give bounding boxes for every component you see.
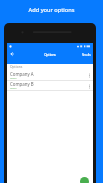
- button[interactable]: Add: [80, 177, 89, 183]
- staticText: Option: [10, 77, 17, 80]
- button[interactable]: More options: [85, 71, 93, 79]
- staticText: Company A: [10, 71, 34, 77]
- staticText: Options: [7, 53, 93, 57]
- button[interactable]: Results: [80, 51, 93, 59]
- staticText: Company B: [10, 81, 34, 87]
- button[interactable]: Back: [8, 50, 16, 58]
- button[interactable]: Company A: [7, 70, 93, 80]
- staticText: Results: [82, 53, 91, 57]
- staticText: Options: [10, 64, 23, 68]
- button[interactable]: Company B: [7, 81, 93, 90]
- button[interactable]: More options: [85, 82, 93, 90]
- staticText: Add your options: [0, 6, 103, 14]
- staticText: Option: [10, 87, 17, 90]
